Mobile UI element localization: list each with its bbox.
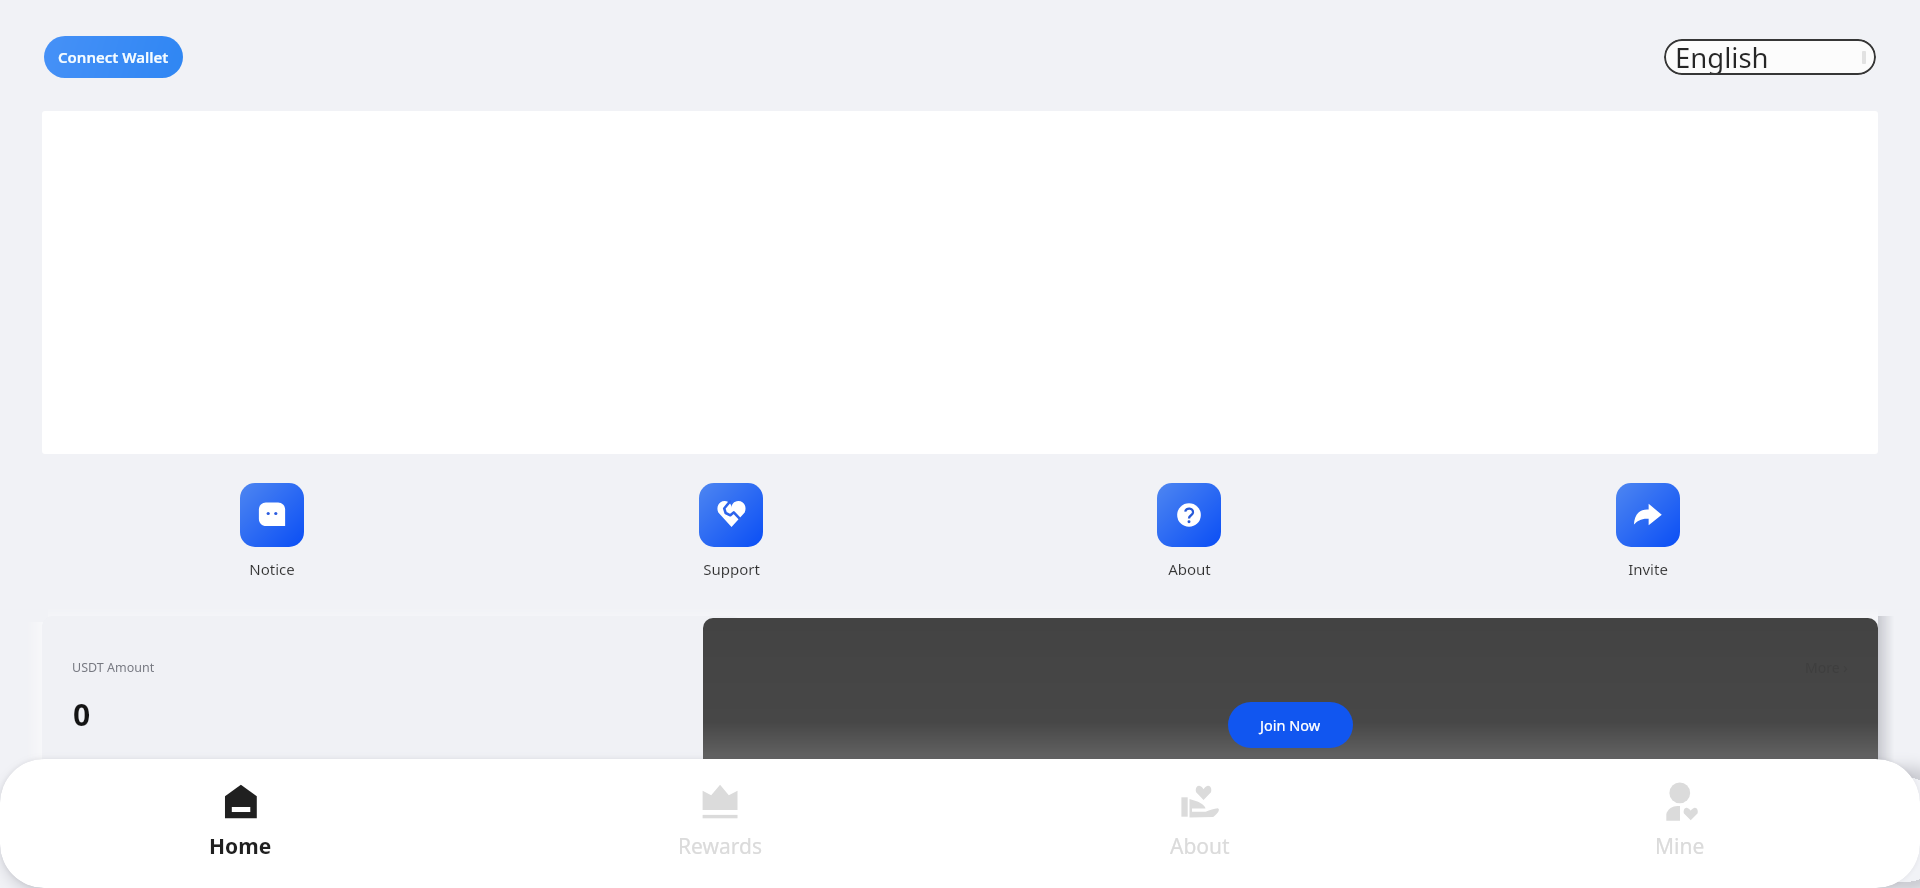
button[interactable]: About	[1129, 483, 1249, 578]
button[interactable]: Notice	[212, 483, 332, 578]
staticText: Connect Wallet	[58, 47, 169, 67]
staticText: Home	[209, 832, 272, 861]
button[interactable]: Support	[671, 483, 791, 578]
staticText: Support	[703, 559, 760, 578]
staticText: 0	[73, 694, 91, 735]
button[interactable]: English	[1664, 39, 1876, 75]
button[interactable]: Join Now	[1228, 702, 1353, 748]
staticText: Mine	[1655, 832, 1705, 861]
staticText: Rewards	[678, 832, 762, 861]
staticText: Join Now	[1260, 715, 1321, 735]
staticText: USDT Amount	[72, 659, 155, 676]
staticText: Notice	[249, 559, 295, 578]
staticText: About	[1170, 832, 1230, 861]
button[interactable]: Home	[0, 759, 480, 888]
staticText: English	[1675, 39, 1769, 75]
staticText: About	[1168, 559, 1211, 578]
button[interactable]: Mine	[1440, 759, 1920, 888]
button[interactable]: Invite	[1588, 483, 1708, 578]
button[interactable]: About	[960, 759, 1440, 888]
staticText: Invite	[1628, 559, 1668, 578]
button[interactable]: Connect Wallet	[44, 36, 183, 78]
button[interactable]: Rewards	[480, 759, 960, 888]
